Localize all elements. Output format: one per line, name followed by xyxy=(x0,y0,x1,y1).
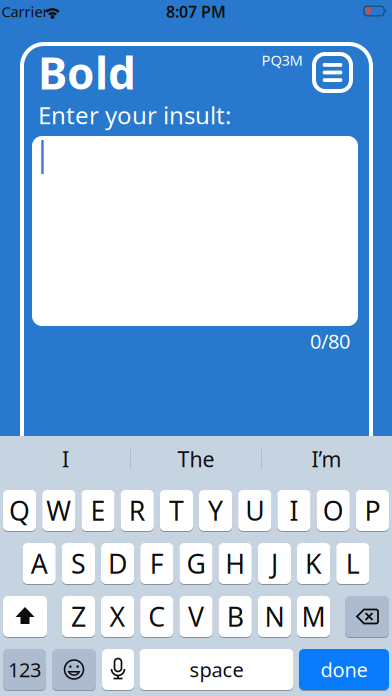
button[interactable]: T xyxy=(160,489,193,531)
button[interactable]: E xyxy=(81,489,115,531)
staticText: 8:07 PM xyxy=(166,1,226,22)
staticText: G xyxy=(186,546,205,581)
button[interactable]: 123 xyxy=(3,648,46,690)
staticText: P xyxy=(364,493,380,528)
staticText: Y xyxy=(208,493,223,528)
button[interactable]: M xyxy=(297,595,330,637)
button[interactable]: H xyxy=(219,542,252,584)
staticText: 123 xyxy=(8,656,41,683)
staticText: K xyxy=(305,546,322,581)
button[interactable]: done xyxy=(299,648,389,690)
button[interactable]: Q xyxy=(3,489,36,531)
staticText: Q xyxy=(9,493,30,528)
staticText: E xyxy=(90,493,105,528)
staticText: 0/80 xyxy=(310,328,350,354)
staticText: F xyxy=(150,546,164,581)
staticText: N xyxy=(264,599,284,634)
staticText: Z xyxy=(71,599,86,634)
staticText: M xyxy=(302,599,326,634)
button[interactable]: Delete xyxy=(345,595,389,637)
button[interactable]: space xyxy=(139,648,293,690)
staticText: H xyxy=(225,546,245,581)
button[interactable]: D xyxy=(101,542,134,584)
button[interactable]: Dictate xyxy=(102,648,134,690)
staticText: I xyxy=(62,445,69,473)
staticText: done xyxy=(320,656,367,683)
staticText: L xyxy=(346,546,360,581)
staticText: B xyxy=(227,599,244,634)
staticText: R xyxy=(129,493,146,528)
staticText: O xyxy=(323,493,344,528)
button[interactable]: L xyxy=(336,542,369,584)
button[interactable]: Insult text field xyxy=(32,136,358,326)
staticText: A xyxy=(31,546,48,581)
staticText: I’m xyxy=(311,445,341,473)
button[interactable]: Emoji xyxy=(52,648,96,690)
staticText: V xyxy=(188,599,204,634)
button[interactable]: R xyxy=(121,489,154,531)
staticText: Bold xyxy=(38,43,136,102)
button[interactable]: I’m xyxy=(262,436,391,482)
staticText: T xyxy=(169,493,184,528)
button[interactable]: O xyxy=(317,489,350,531)
button[interactable]: The xyxy=(131,436,261,482)
staticText: PQ3M xyxy=(261,50,302,70)
button[interactable]: U xyxy=(238,489,271,531)
staticText: W xyxy=(46,493,71,528)
button[interactable]: F xyxy=(140,542,173,584)
staticText: D xyxy=(108,546,127,581)
staticText: X xyxy=(110,599,126,634)
button[interactable]: K xyxy=(297,542,330,584)
button[interactable]: W xyxy=(42,489,75,531)
button[interactable]: C xyxy=(140,595,173,637)
button[interactable]: S xyxy=(62,542,95,584)
staticText: S xyxy=(71,546,86,581)
staticText: I xyxy=(289,493,298,528)
button[interactable]: P xyxy=(356,489,389,531)
button[interactable]: Shift xyxy=(3,595,47,637)
staticText: space xyxy=(189,656,243,683)
button[interactable]: Menu xyxy=(312,52,353,93)
button[interactable]: V xyxy=(179,595,213,637)
button[interactable]: A xyxy=(23,542,56,584)
button[interactable]: I xyxy=(1,436,130,482)
button[interactable]: I xyxy=(277,489,311,531)
staticText: The xyxy=(177,445,214,473)
staticText: U xyxy=(245,493,264,528)
staticText: C xyxy=(148,599,165,634)
staticText: Enter your insult: xyxy=(38,99,231,131)
button[interactable]: Z xyxy=(62,595,95,637)
button[interactable]: N xyxy=(258,595,291,637)
button[interactable]: X xyxy=(101,595,134,637)
button[interactable]: G xyxy=(179,542,213,584)
staticText: Carrier xyxy=(1,2,48,21)
button[interactable]: B xyxy=(219,595,252,637)
button[interactable]: Y xyxy=(199,489,232,531)
staticText: J xyxy=(271,546,278,581)
button[interactable]: J xyxy=(258,542,291,584)
